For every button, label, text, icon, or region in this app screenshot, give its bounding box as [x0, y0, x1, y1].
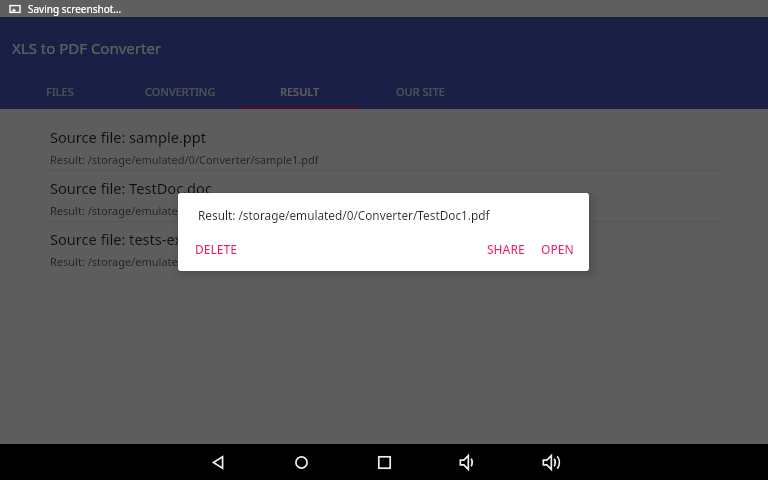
- staticText: CONVERTING: [145, 84, 216, 99]
- button[interactable]: Dismiss dialog: [0, 0, 768, 480]
- button[interactable]: Volume up: [509, 444, 592, 480]
- staticText: SHARE: [487, 241, 525, 257]
- button[interactable]: CONVERTING: [120, 73, 240, 109]
- staticText: FILES: [46, 84, 74, 99]
- staticText: XLS to PDF Converter: [12, 38, 162, 58]
- button[interactable]: Volume down: [426, 444, 509, 480]
- button[interactable]: Source file: tests-exam.xls: [0, 222, 768, 273]
- staticText: Source file: TestDoc.doc: [50, 178, 212, 198]
- staticText: OUR SITE: [396, 84, 445, 99]
- staticText: OPEN: [541, 241, 574, 257]
- button[interactable]: Source file: TestDoc.doc: [0, 171, 768, 222]
- staticText: Source file: sample.ppt: [50, 127, 207, 147]
- button[interactable]: DELETE: [187, 233, 245, 265]
- staticText: Result: /storage/emulated/0/Converter/Te…: [50, 203, 322, 218]
- staticText: Result: /storage/emulated/0/Converter/sa…: [50, 152, 319, 167]
- button[interactable]: Back: [177, 444, 260, 480]
- staticText: DELETE: [195, 241, 237, 257]
- button[interactable]: RESULT: [240, 73, 360, 109]
- button[interactable]: SHARE: [479, 233, 533, 265]
- staticText: Saving screenshot…: [28, 2, 122, 16]
- button[interactable]: Source file: sample.ppt: [0, 120, 768, 171]
- staticText: Result: /storage/emulated/0/Converter/Te…: [198, 207, 490, 223]
- button[interactable]: OUR SITE: [360, 73, 480, 109]
- button[interactable]: Home: [260, 444, 343, 480]
- button[interactable]: FILES: [0, 73, 120, 109]
- staticText: Result: /storage/emulated/0/Converter/te…: [50, 254, 306, 269]
- button[interactable]: OPEN: [533, 233, 582, 265]
- staticText: Source file: tests-exam.xls: [50, 229, 227, 249]
- staticText: RESULT: [280, 84, 320, 99]
- button[interactable]: Recents: [343, 444, 426, 480]
